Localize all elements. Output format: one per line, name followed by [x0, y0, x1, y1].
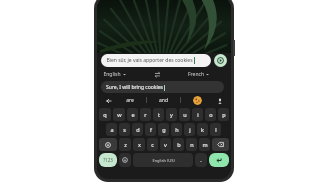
button[interactable]: t [153, 108, 164, 121]
button[interactable]: English (US) [133, 153, 193, 167]
staticText: w [117, 111, 122, 118]
staticText: i [197, 111, 199, 118]
staticText: are [126, 97, 134, 104]
staticText: r [144, 111, 147, 118]
staticText: n [190, 141, 194, 148]
staticText: English (US) [152, 158, 175, 163]
staticText: v [164, 141, 167, 148]
button[interactable]: Bien sûr, je vais apporter des cookies [101, 54, 211, 67]
button[interactable]: g [158, 123, 169, 136]
staticText: p [222, 111, 226, 118]
button[interactable]: Backspace [212, 138, 229, 151]
button[interactable]: h [171, 123, 182, 136]
staticText: x [138, 141, 141, 148]
staticText: English [103, 71, 121, 78]
staticText: Sure, I will bring cookies [106, 84, 163, 91]
staticText: m [202, 141, 208, 148]
staticText: s [123, 126, 126, 133]
button[interactable]: d [132, 123, 143, 136]
staticText: . [200, 157, 202, 164]
staticText: g [162, 126, 166, 133]
button[interactable]: z [119, 138, 131, 151]
button[interactable]: m [199, 138, 210, 151]
button[interactable]: e [127, 108, 138, 121]
button[interactable]: b [173, 138, 184, 151]
staticText: f [150, 126, 152, 133]
button[interactable]: c [147, 138, 158, 151]
staticText: l [215, 126, 217, 133]
staticText: u [183, 111, 187, 118]
staticText: z [124, 141, 127, 148]
button[interactable]: Swap languages [152, 69, 162, 79]
staticText: y [170, 111, 173, 118]
button[interactable]: f [145, 123, 156, 136]
button[interactable]: Emoji suggestion [193, 96, 202, 105]
staticText: French [188, 71, 204, 78]
staticText: o [209, 111, 213, 118]
button[interactable]: w [113, 108, 125, 121]
staticText: a [110, 126, 114, 133]
staticText: d [136, 126, 140, 133]
staticText: k [201, 126, 204, 133]
button[interactable]: r [140, 108, 151, 121]
button[interactable]: and [157, 95, 170, 106]
button[interactable]: Emoji [119, 153, 131, 167]
staticText: b [177, 141, 181, 148]
button[interactable]: French [186, 70, 211, 79]
staticText: j [189, 126, 191, 133]
button[interactable]: Back [103, 95, 114, 106]
button[interactable]: ?123 [99, 153, 117, 167]
button[interactable]: Shift [99, 138, 117, 151]
staticText: ?123 [103, 157, 113, 163]
button[interactable]: s [119, 123, 130, 136]
button[interactable]: y [166, 108, 177, 121]
button[interactable]: o [205, 108, 216, 121]
button[interactable]: k [197, 123, 208, 136]
staticText: Bien sûr, je vais apporter des cookies [106, 57, 193, 64]
button[interactable]: Sure, I will bring cookies [101, 81, 224, 93]
button[interactable]: x [133, 138, 145, 151]
staticText: e [131, 111, 135, 118]
button[interactable]: Send [214, 54, 227, 67]
staticText: and [159, 97, 168, 104]
staticText: h [175, 126, 179, 133]
button[interactable]: Voice input [214, 95, 225, 106]
button[interactable]: . [195, 153, 207, 167]
button[interactable]: i [192, 108, 203, 121]
staticText: c [151, 141, 154, 148]
button[interactable]: q [99, 108, 111, 121]
button[interactable]: n [186, 138, 197, 151]
staticText: q [103, 111, 107, 118]
button[interactable]: English [101, 70, 128, 79]
button[interactable]: are [124, 95, 136, 106]
button[interactable]: u [179, 108, 190, 121]
button[interactable]: v [160, 138, 171, 151]
button[interactable]: Enter [209, 153, 229, 167]
button[interactable]: a [106, 123, 117, 136]
button[interactable]: j [184, 123, 195, 136]
staticText: t [158, 111, 160, 118]
button[interactable]: p [218, 108, 229, 121]
button[interactable]: l [210, 123, 221, 136]
